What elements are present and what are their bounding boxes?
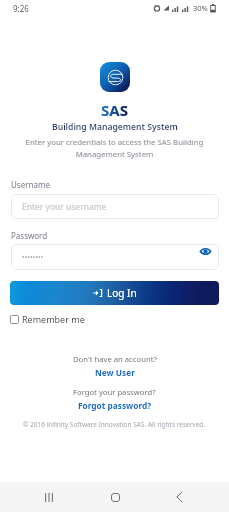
staticText: Remember me bbox=[22, 313, 85, 325]
button[interactable]: Forgot password? bbox=[78, 400, 152, 411]
staticText: Username bbox=[11, 179, 50, 190]
staticText: Enter your username bbox=[22, 201, 107, 213]
staticText: 9:26 bbox=[13, 3, 29, 14]
button[interactable]: Remember me bbox=[10, 313, 85, 325]
staticText: Enter your credentials to access the SAS… bbox=[18, 137, 211, 160]
staticText: Don't have an account? bbox=[73, 354, 157, 364]
button[interactable]: Show password bbox=[198, 245, 212, 257]
staticText: 30% bbox=[193, 3, 208, 13]
staticText: SAS bbox=[101, 100, 128, 120]
button[interactable]: Home bbox=[100, 482, 130, 512]
button[interactable]: •••••••• bbox=[11, 244, 219, 270]
staticText: •••••••• bbox=[22, 253, 44, 263]
staticText: Building Management System bbox=[52, 121, 178, 133]
button[interactable]: Log In bbox=[10, 281, 219, 305]
button[interactable]: Back bbox=[164, 482, 194, 512]
staticText: Forgot password? bbox=[78, 400, 152, 411]
button[interactable]: Recent apps bbox=[34, 482, 64, 512]
staticText: Forgot your password? bbox=[73, 387, 156, 397]
staticText: Password bbox=[11, 230, 48, 241]
staticText: New User bbox=[95, 367, 135, 378]
staticText: © 2016 Infinity Software Innovation SAS.… bbox=[23, 420, 206, 429]
staticText: Log In bbox=[107, 286, 137, 300]
button[interactable]: Enter your username bbox=[11, 194, 219, 219]
button[interactable]: New User bbox=[95, 367, 135, 378]
